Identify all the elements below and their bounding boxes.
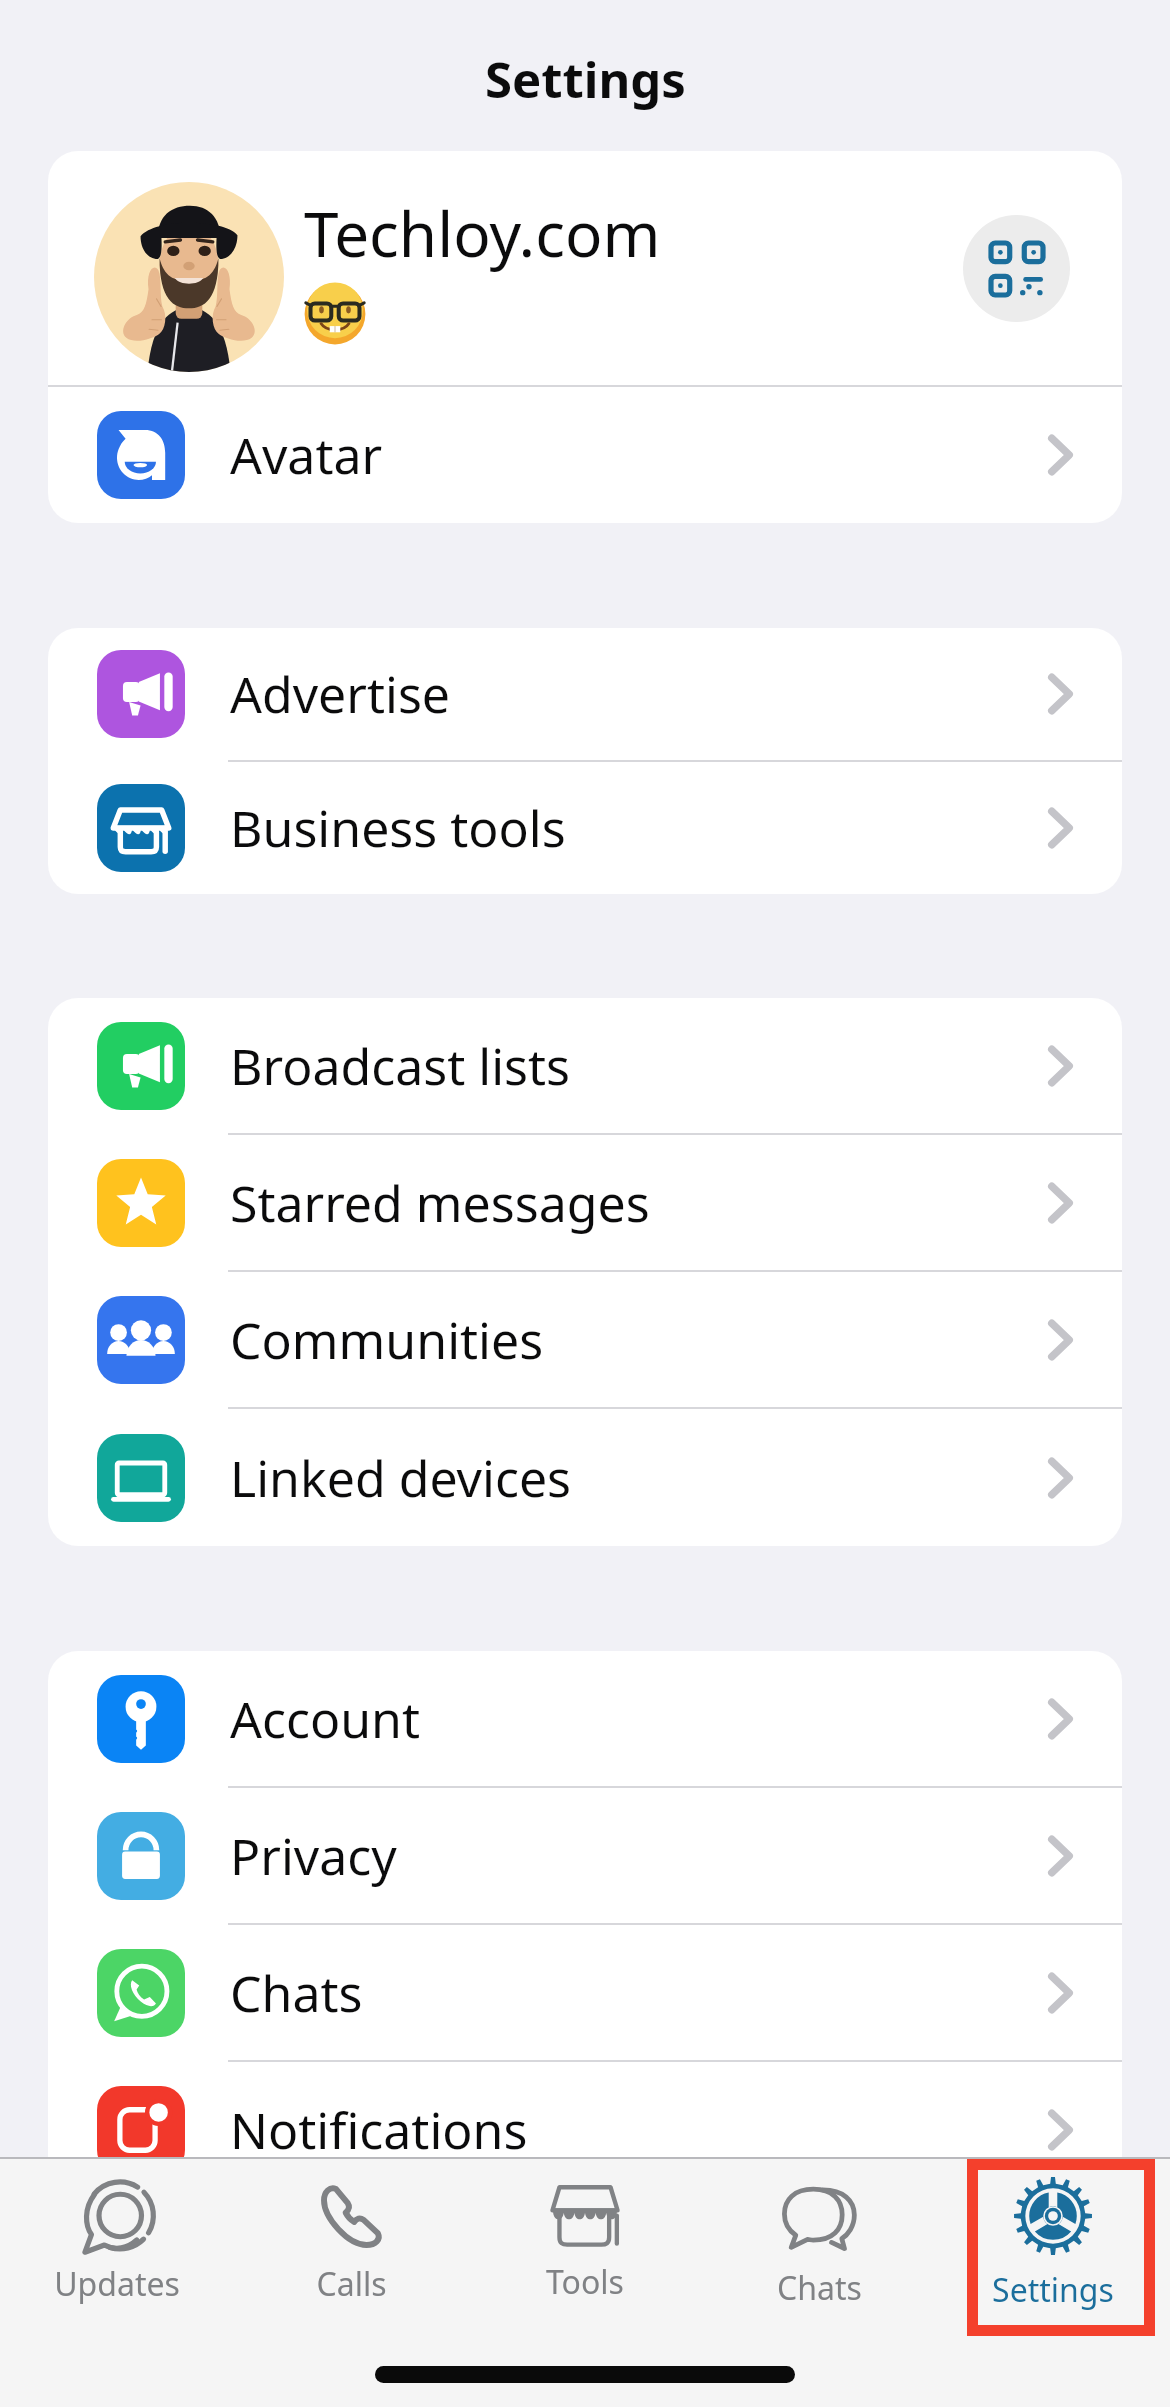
button[interactable]: Storage and data [48,2199,1122,2334]
button[interactable]: Advertise [48,628,1122,760]
staticText: Techloy.com [304,191,661,275]
staticText: Advertise [230,660,1049,728]
button[interactable]: Notifications [48,2062,1122,2197]
button[interactable]: Updates [0,2159,234,2337]
staticText: Calls [316,2262,387,2306]
staticText: Avatar [230,421,1049,489]
button[interactable]: Broadcast lists [48,998,1122,1133]
staticText: Communities [230,1306,1049,1374]
button[interactable]: Business tools [48,762,1122,894]
button[interactable]: Techloy.com [48,151,1122,385]
button[interactable]: Starred messages [48,1135,1122,1270]
staticText: Storage and data [230,2233,1049,2301]
staticText: Settings [485,46,686,113]
button[interactable]: Privacy [48,1788,1122,1923]
button[interactable]: Communities [48,1272,1122,1407]
staticText: Chats [230,1959,1049,2027]
staticText: Notifications [230,2096,1049,2164]
staticText: Starred messages [230,1169,1049,1237]
staticText: Broadcast lists [230,1032,1049,1100]
button[interactable]: Show QR code [963,215,1070,322]
button[interactable]: Chats [48,1925,1122,2060]
staticText: Account [230,1685,1049,1753]
button[interactable]: Avatar [48,387,1122,523]
staticText: Privacy [230,1822,1049,1890]
staticText: Linked devices [230,1444,1049,1512]
button[interactable]: Tools [468,2159,702,2337]
button[interactable]: Chats [702,2159,936,2337]
staticText: Business tools [230,794,1049,862]
button[interactable]: Settings [936,2159,1170,2337]
button[interactable]: Account [48,1651,1122,1786]
staticText: Chats [777,2266,862,2310]
button[interactable]: Calls [234,2159,468,2337]
button[interactable]: Linked devices [48,1409,1122,1546]
staticText: Tools [546,2260,624,2304]
staticText: Updates [54,2262,180,2306]
staticText: Settings [992,2268,1114,2312]
